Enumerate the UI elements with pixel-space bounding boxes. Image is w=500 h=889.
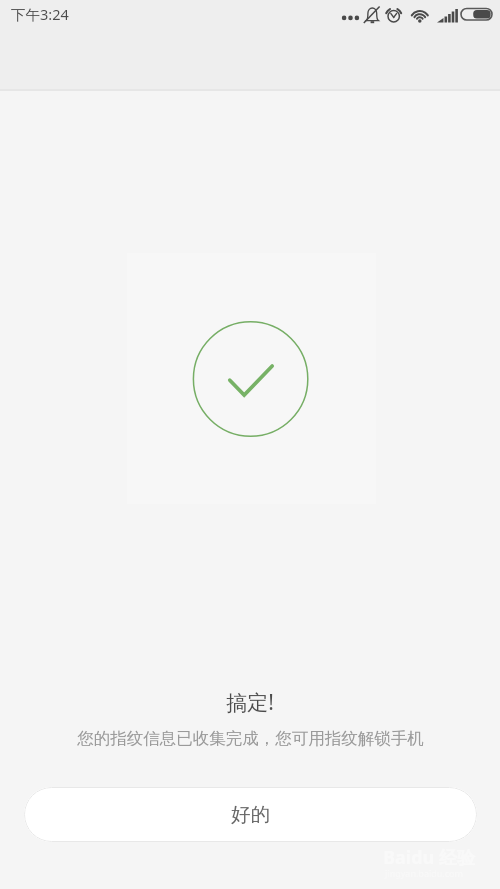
staticText: 下午3:24 [11,4,69,24]
staticText: 您的指纹信息已收集完成，您可用指纹解锁手机 [77,728,424,749]
staticText: 搞定! [226,688,274,717]
staticText: 好的 [231,802,270,827]
other: Fingerprint enrolment complete [190,318,312,440]
button[interactable]: 好的 [24,787,477,842]
